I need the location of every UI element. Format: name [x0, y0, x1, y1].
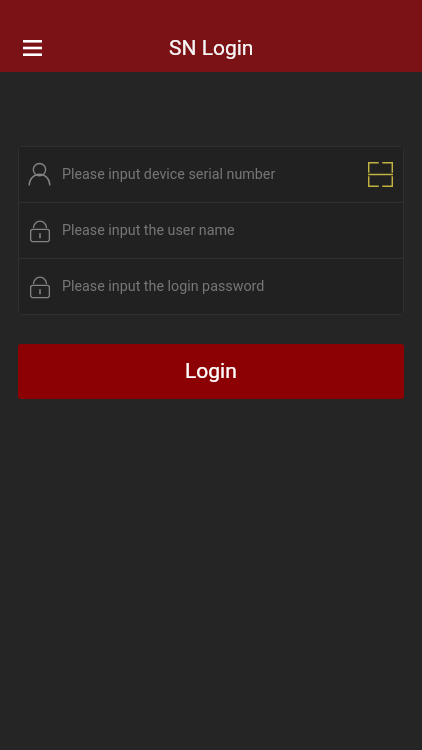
button[interactable]: Please input device serial number: [19, 147, 403, 202]
button[interactable]: Open navigation menu: [10, 26, 54, 70]
button[interactable]: Please input the login password: [19, 259, 403, 314]
button[interactable]: Please input the user name: [19, 203, 403, 258]
button[interactable]: Login: [18, 344, 404, 399]
button[interactable]: Scan serial number: [358, 152, 403, 197]
staticText: Please input the login password: [62, 278, 387, 295]
staticText: SN Login: [169, 36, 254, 61]
staticText: Please input device serial number: [62, 166, 358, 183]
staticText: Login: [185, 359, 237, 384]
staticText: Please input the user name: [62, 222, 387, 239]
